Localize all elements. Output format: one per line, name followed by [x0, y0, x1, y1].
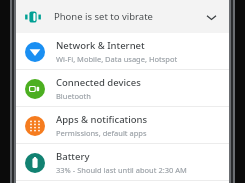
staticText: 33% - Should last until about 2:30 AM: [56, 165, 187, 175]
staticText: Network & Internet: [56, 39, 145, 52]
staticText: Permissions, default apps: [56, 128, 147, 138]
button[interactable]: Expand: [203, 9, 219, 25]
staticText: Wi-Fi, Mobile, Data usage, Hotspot: [56, 54, 178, 64]
staticText: Bluetooth: [56, 91, 91, 101]
staticText: Connected devices: [56, 76, 141, 89]
button[interactable]: Network & Internet: [16, 33, 229, 70]
button[interactable]: Connected devices: [16, 70, 229, 107]
staticText: Phone is set to vibrate: [54, 10, 203, 23]
button[interactable]: Phone is set to vibrate: [16, 0, 229, 33]
staticText: Apps & notifications: [56, 113, 148, 126]
button[interactable]: Apps & notifications: [16, 107, 229, 144]
staticText: Battery: [56, 150, 90, 163]
button[interactable]: Battery: [16, 144, 229, 181]
